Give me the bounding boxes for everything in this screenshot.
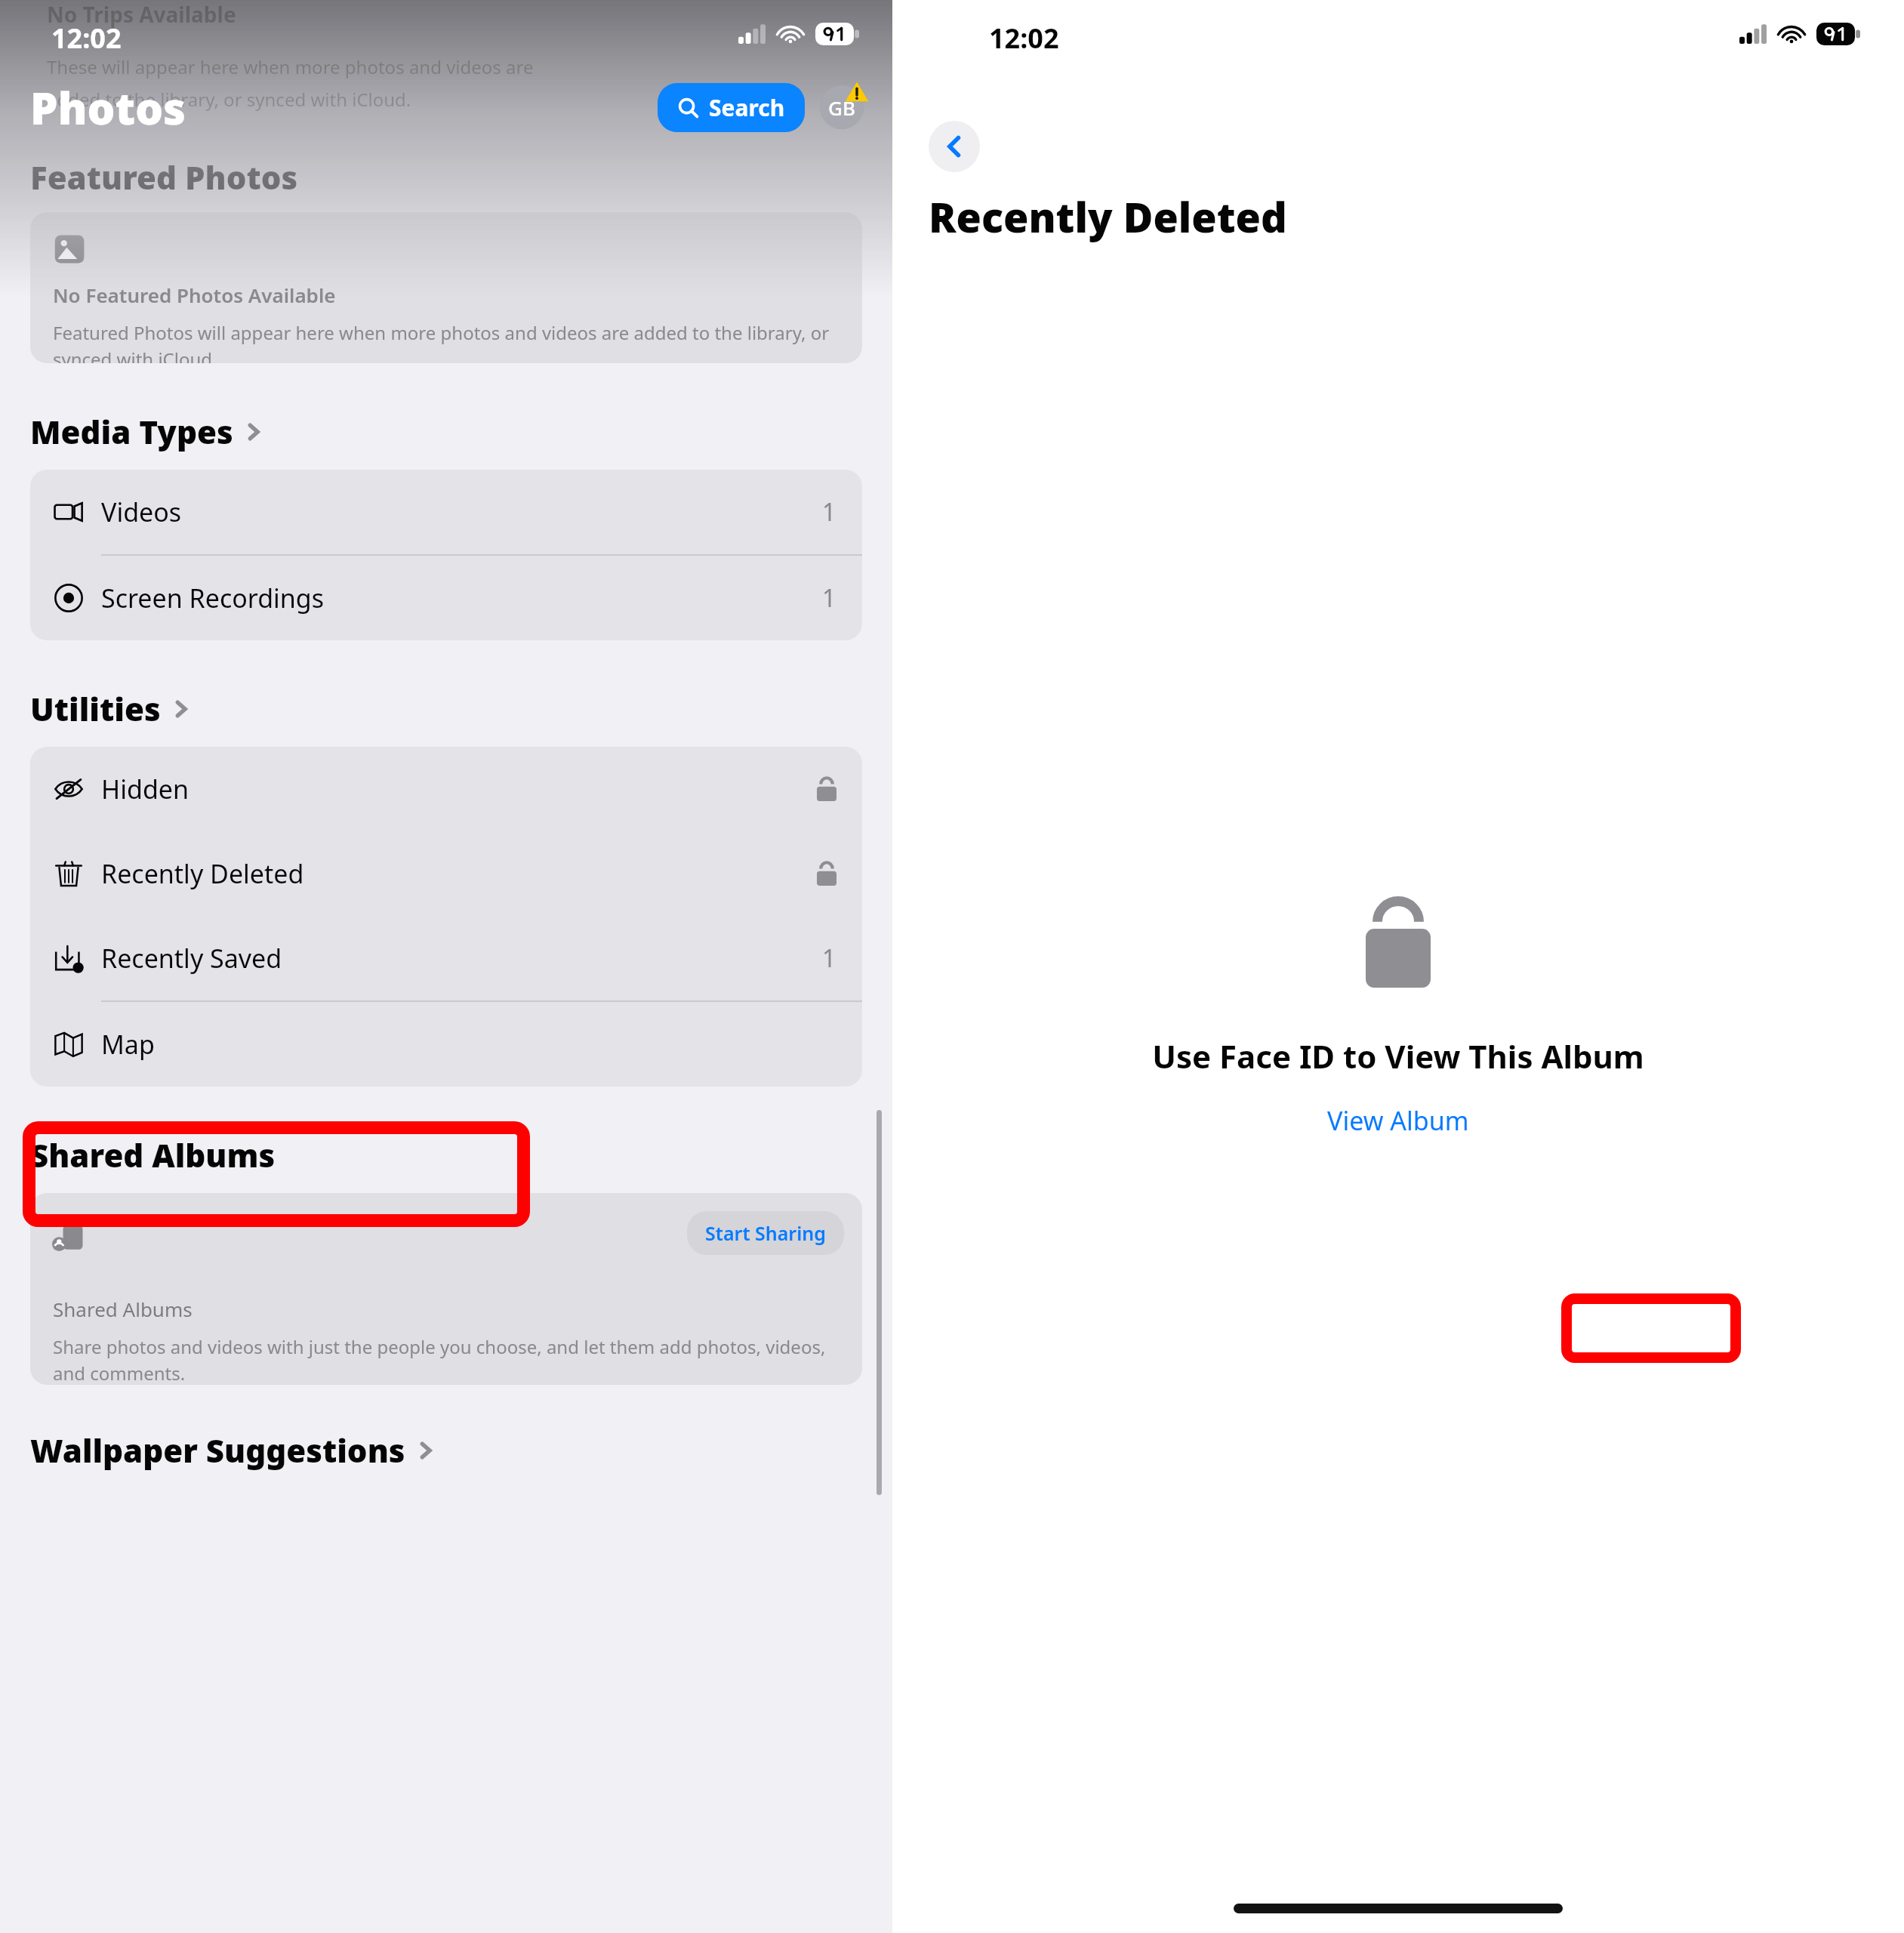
- staticText: GB: [828, 94, 855, 121]
- staticText: Photos: [30, 78, 186, 137]
- button[interactable]: No Featured Photos Available: [30, 212, 862, 363]
- staticText: Search: [709, 92, 785, 123]
- button[interactable]: Utilities: [30, 687, 892, 730]
- button[interactable]: Videos: [30, 470, 862, 556]
- staticText: Recently Deleted: [929, 189, 1287, 245]
- staticText: These will appear here when more photos …: [47, 54, 534, 79]
- staticText: Utilities: [30, 687, 161, 730]
- staticText: Featured Photos: [30, 156, 298, 199]
- staticText: No Featured Photos Available: [53, 282, 336, 308]
- staticText: Shared Albums: [53, 1296, 193, 1322]
- staticText: 12:02: [989, 20, 1059, 57]
- button[interactable]: Account: [820, 85, 864, 129]
- button[interactable]: Shared Albums: [30, 1133, 892, 1176]
- staticText: Start Sharing: [705, 1220, 826, 1246]
- staticText: Share photos and videos with just the pe…: [53, 1334, 836, 1385]
- staticText: 12:02: [51, 20, 122, 57]
- staticText: No Trips Available: [47, 0, 236, 29]
- button[interactable]: Recently Deleted: [30, 831, 862, 916]
- staticText: Use Face ID to View This Album: [1152, 1034, 1644, 1077]
- staticText: Hidden: [101, 772, 189, 806]
- staticText: Videos: [101, 495, 182, 529]
- staticText: Screen Recordings: [101, 581, 325, 615]
- button[interactable]: View Album: [1300, 1091, 1496, 1150]
- button[interactable]: Start Sharing: [30, 1193, 862, 1385]
- staticText: GB: [828, 94, 855, 121]
- button[interactable]: Start Sharing: [687, 1211, 844, 1255]
- button[interactable]: Search: [658, 83, 805, 132]
- staticText: Recently Deleted: [101, 856, 304, 891]
- staticText: Shared Albums: [30, 1133, 276, 1176]
- button[interactable]: Media Types: [30, 410, 892, 453]
- button[interactable]: Screen Recordings: [30, 556, 862, 640]
- button[interactable]: Featured Photos: [30, 156, 892, 199]
- staticText: 1: [822, 942, 836, 975]
- button[interactable]: Hidden: [30, 747, 862, 831]
- button[interactable]: Wallpaper Suggestions: [30, 1429, 892, 1472]
- staticText: Media Types: [30, 410, 233, 453]
- button[interactable]: Account: [820, 85, 864, 129]
- staticText: View Album: [1327, 1103, 1469, 1138]
- button[interactable]: Recently Saved: [30, 916, 862, 1002]
- staticText: Wallpaper Suggestions: [30, 1429, 405, 1472]
- staticText: Photos: [30, 78, 186, 137]
- button[interactable]: Search: [658, 83, 805, 132]
- staticText: 1: [822, 581, 836, 615]
- staticText: Map: [101, 1027, 155, 1062]
- button[interactable]: Map: [30, 1002, 862, 1087]
- staticText: Search: [709, 92, 785, 123]
- staticText: Recently Saved: [101, 941, 282, 976]
- staticText: added to the library, or synced with iCl…: [47, 87, 411, 112]
- staticText: Featured Photos will appear here when mo…: [53, 320, 836, 363]
- staticText: 1: [822, 495, 836, 529]
- button[interactable]: Back: [929, 121, 980, 172]
